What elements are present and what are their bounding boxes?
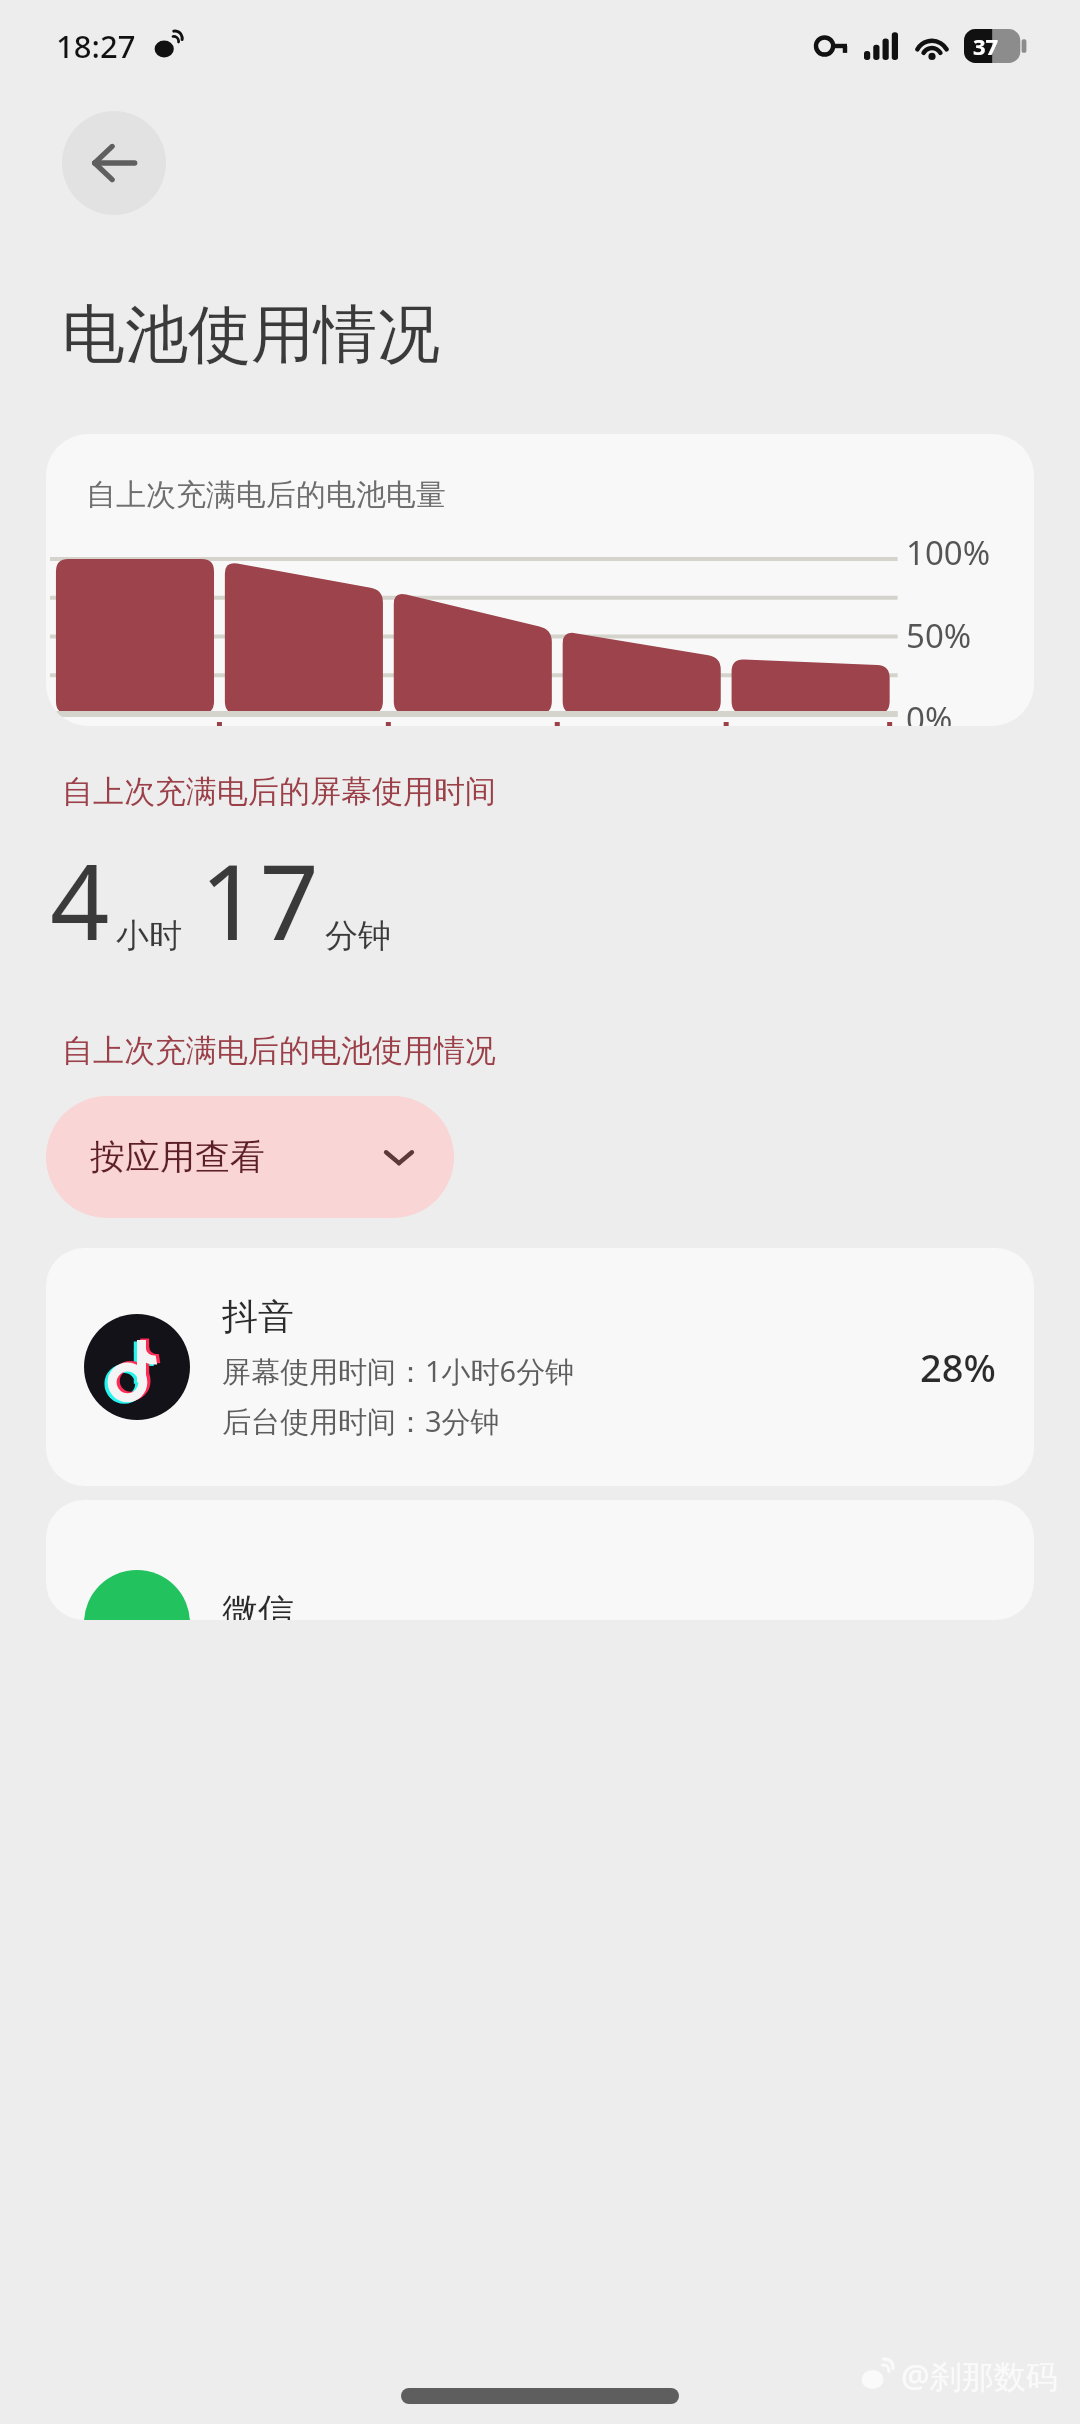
staticText: 小时 [116, 915, 182, 957]
staticText: 37 [973, 31, 999, 61]
staticText: 18:27 [56, 25, 136, 67]
staticText: 抖音 [222, 1294, 294, 1339]
staticText: 自上次充满电后的电池电量 [86, 476, 446, 514]
button[interactable]: Back [62, 111, 166, 215]
staticText: 50% [906, 613, 972, 658]
staticText: 电池使用情况 [62, 295, 440, 374]
staticText: 微信 [222, 1589, 294, 1620]
staticText: 17 [200, 829, 319, 971]
staticText: 4 [50, 829, 110, 971]
staticText: 屏幕使用时间：1小时6分钟 [222, 1351, 575, 1391]
staticText: 按应用查看 [90, 1135, 265, 1179]
button[interactable]: 微信 [46, 1500, 1034, 1620]
button[interactable]: 抖音 [46, 1248, 1034, 1486]
staticText: 后台使用时间：3分钟 [222, 1401, 500, 1441]
staticText: 0% [906, 696, 953, 726]
staticText: 28% [920, 1341, 996, 1393]
staticText: 分钟 [325, 915, 391, 957]
staticText: @刹那数码 [901, 2354, 1058, 2398]
button[interactable]: 自上次充满电后的电池电量 [46, 434, 1034, 726]
staticText: 100% [906, 530, 991, 575]
staticText: 自上次充满电后的屏幕使用时间 [62, 772, 496, 811]
button[interactable]: 按应用查看 [46, 1096, 454, 1218]
staticText: 自上次充满电后的电池使用情况 [62, 1031, 496, 1070]
